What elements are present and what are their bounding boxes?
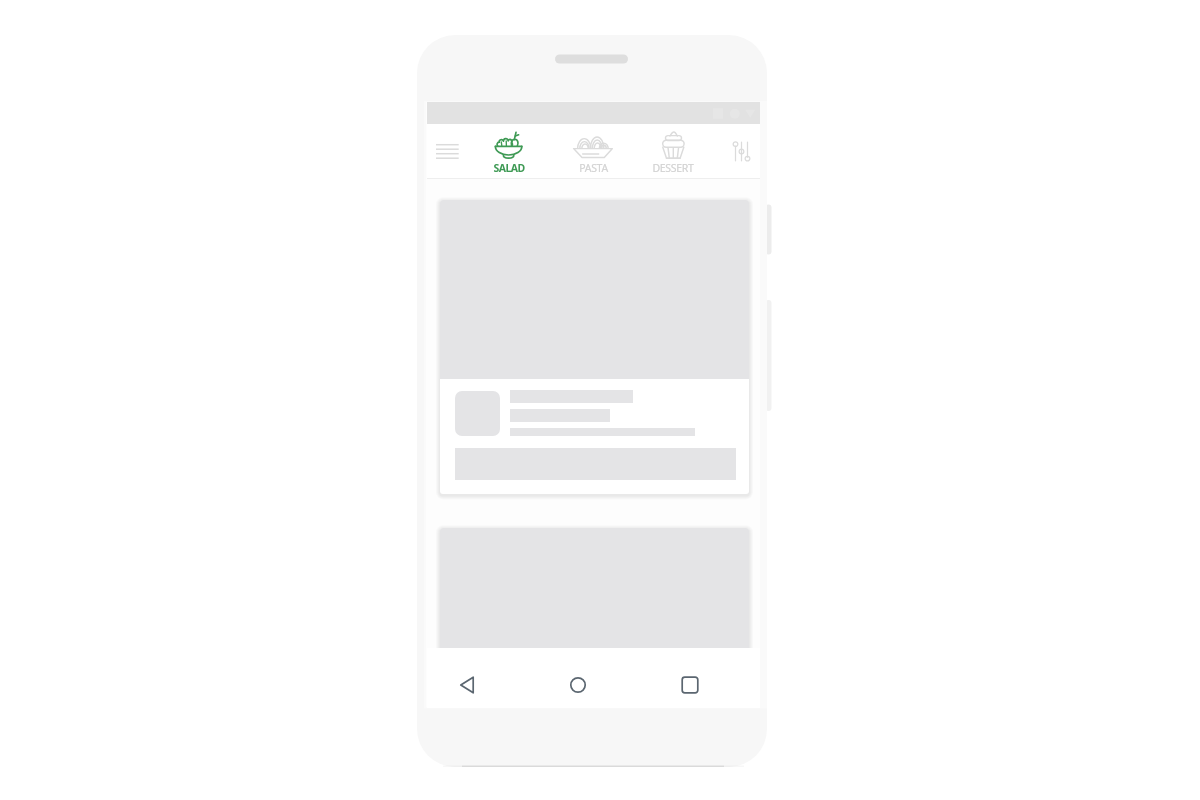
button[interactable]: Open navigation menu: [427, 124, 468, 179]
button[interactable]: [440, 528, 749, 668]
button[interactable]: Home: [556, 663, 600, 707]
button[interactable]: Recent apps: [668, 663, 712, 707]
button[interactable]: Back: [446, 663, 490, 707]
staticText: PASTA: [579, 161, 608, 175]
button[interactable]: PASTA: [562, 124, 624, 179]
button[interactable]: DESSERT: [642, 124, 704, 179]
button[interactable]: [440, 200, 749, 494]
button[interactable]: SALAD: [478, 124, 540, 179]
staticText: DESSERT: [652, 161, 694, 175]
button[interactable]: Filter options: [723, 124, 759, 179]
staticText: SALAD: [493, 161, 525, 175]
